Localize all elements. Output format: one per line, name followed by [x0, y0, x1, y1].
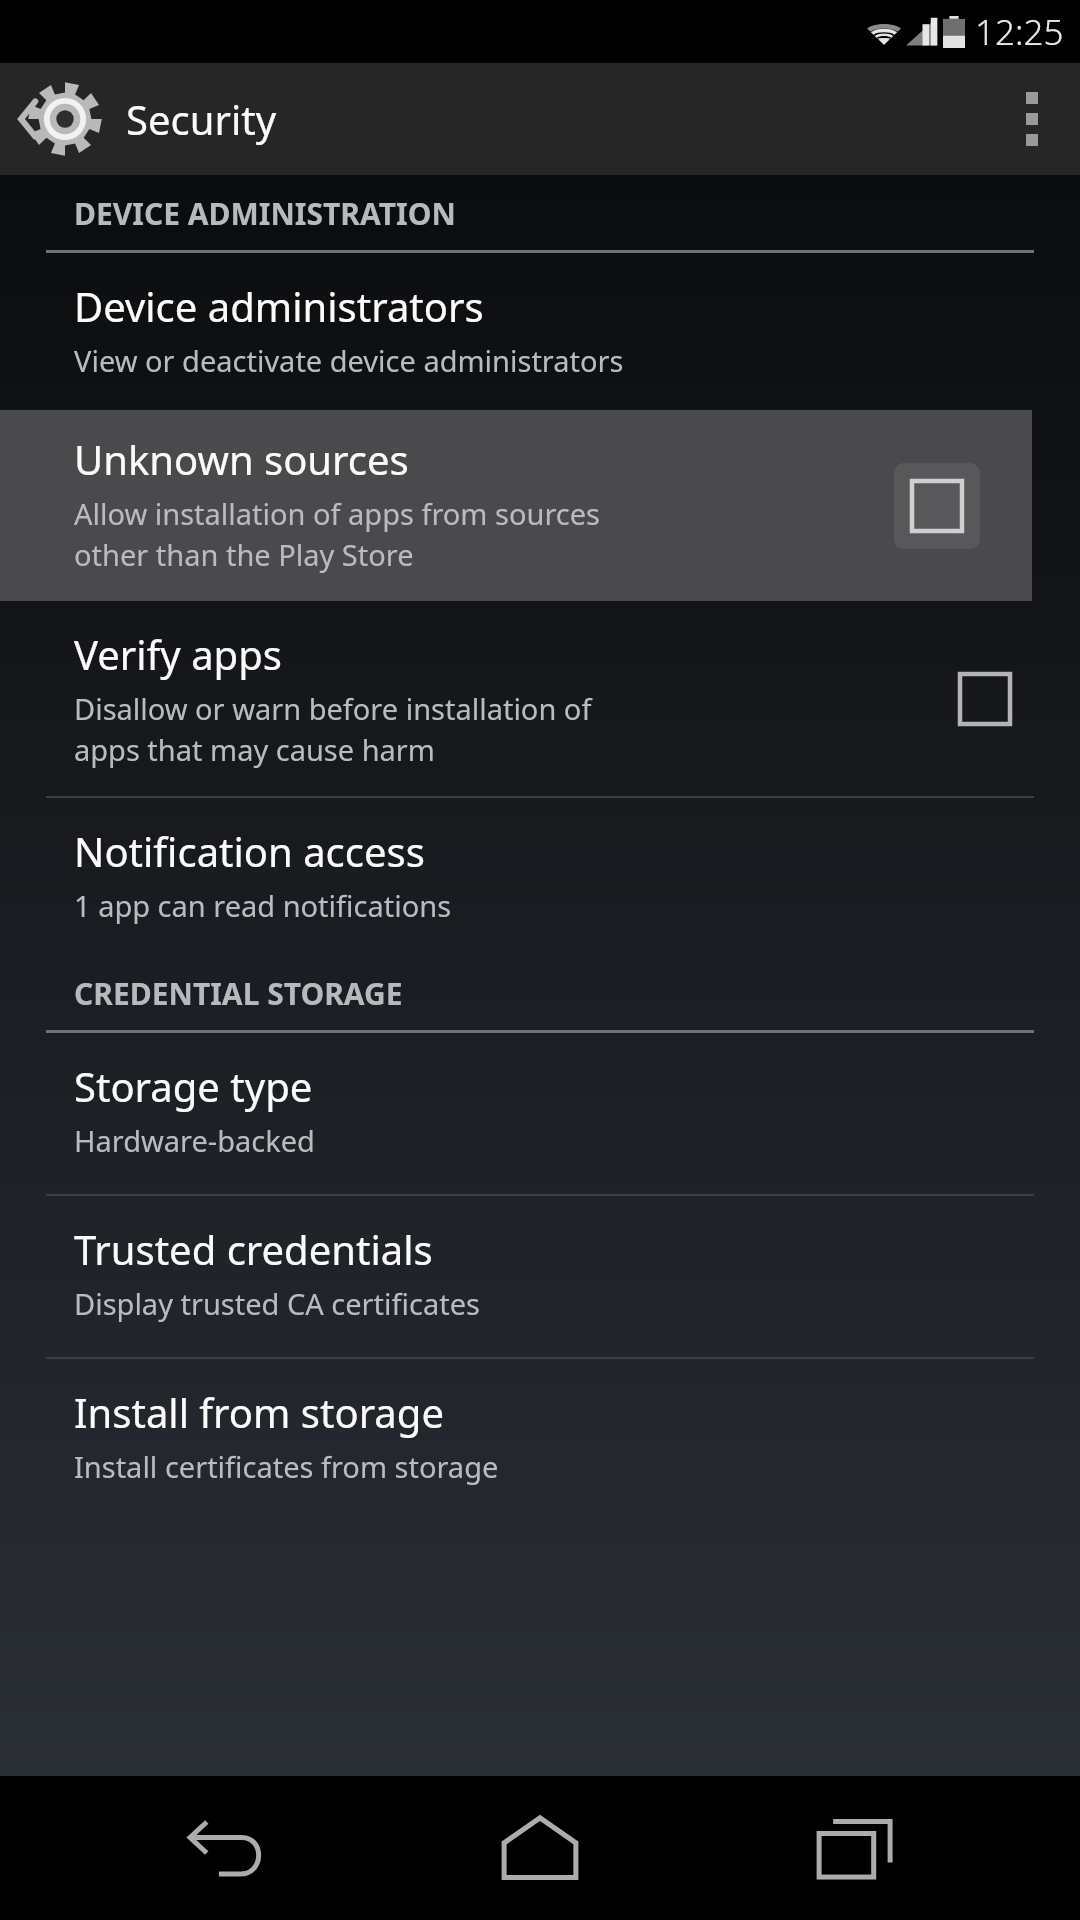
staticText: Display trusted CA certificates [74, 1284, 480, 1323]
button[interactable]: Storage type [0, 1033, 1080, 1194]
button[interactable]: Trusted credentials [0, 1196, 1080, 1357]
staticText: Install from storage [74, 1385, 444, 1439]
staticText: Security [126, 92, 277, 146]
button[interactable]: More options [984, 63, 1080, 175]
button[interactable]: Notification access [0, 798, 1080, 959]
staticText: Unknown sources [74, 432, 409, 486]
button[interactable]: Unknown sources checkbox [894, 463, 980, 549]
button[interactable]: Unknown sources [0, 410, 1032, 601]
button[interactable]: Verify apps [0, 601, 1080, 796]
staticText: Install certificates from storage [74, 1447, 499, 1486]
staticText: Storage type [74, 1059, 313, 1113]
staticText: Disallow or warn before installation of … [74, 689, 592, 770]
button[interactable]: Recents [765, 1776, 945, 1920]
staticText: Allow installation of apps from sources … [74, 494, 600, 575]
button[interactable]: Device administrators [0, 253, 1080, 410]
staticText: Device administrators [74, 279, 484, 333]
button[interactable]: Install from storage [0, 1359, 1080, 1512]
staticText: Verify apps [74, 627, 282, 681]
staticText: DEVICE ADMINISTRATION [74, 193, 456, 234]
button[interactable]: Verify apps checkbox [942, 656, 1028, 742]
other: Navigate up [10, 79, 120, 159]
button[interactable]: Back [135, 1776, 315, 1920]
staticText: Hardware-backed [74, 1121, 315, 1160]
staticText: CREDENTIAL STORAGE [74, 973, 403, 1014]
staticText: 12:25 [975, 8, 1064, 56]
staticText: Trusted credentials [74, 1222, 433, 1276]
staticText: Notification access [74, 824, 425, 878]
staticText: View or deactivate device administrators [74, 341, 624, 380]
button[interactable]: Navigate up [0, 63, 297, 175]
staticText: 1 app can read notifications [74, 886, 452, 925]
button[interactable]: Home [450, 1776, 630, 1920]
